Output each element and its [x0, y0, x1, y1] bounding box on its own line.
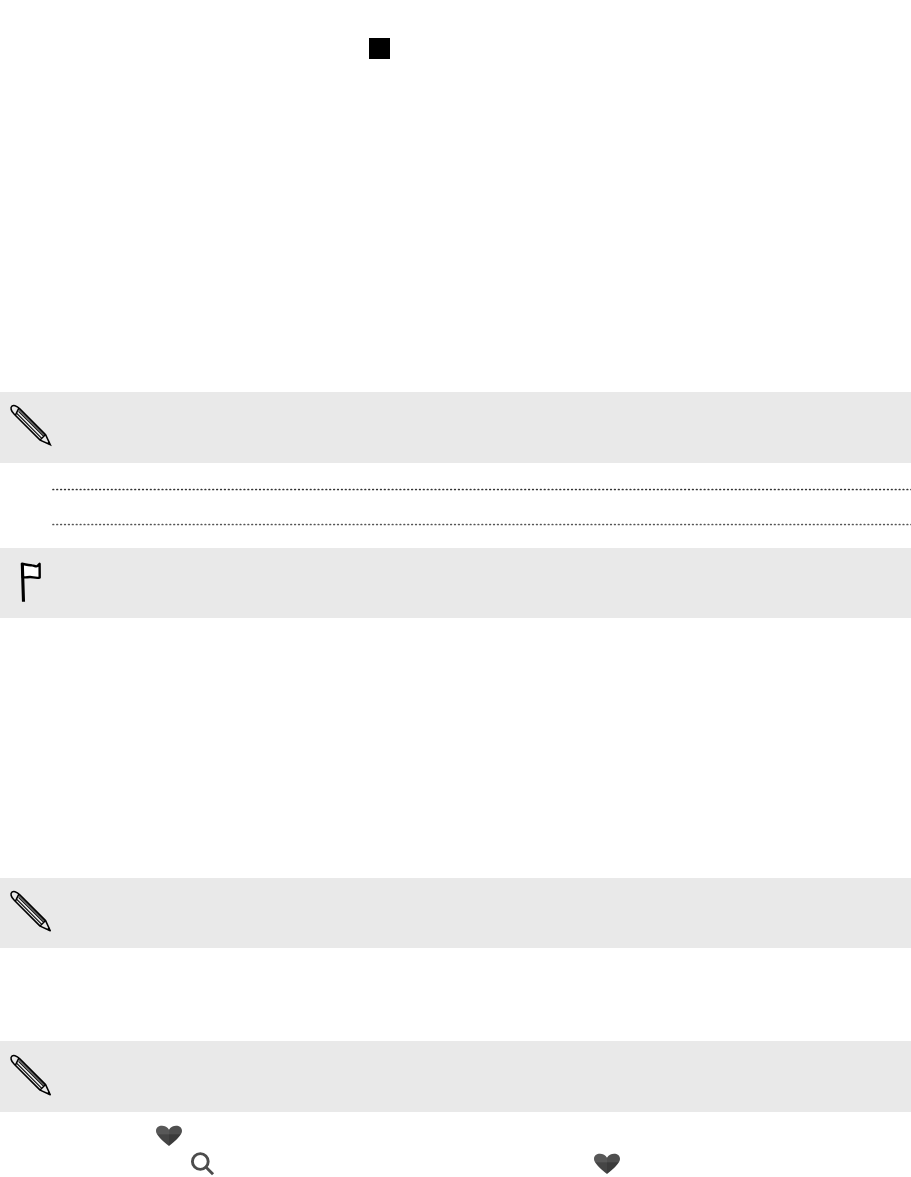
button[interactable]: Search: [189, 1150, 215, 1176]
button[interactable]: Favorite: [594, 1152, 620, 1174]
button[interactable]: [0, 1041, 911, 1112]
button[interactable]: [0, 548, 911, 618]
button[interactable]: [0, 392, 911, 463]
button[interactable]: Favorite: [156, 1124, 182, 1146]
button[interactable]: [0, 878, 911, 948]
